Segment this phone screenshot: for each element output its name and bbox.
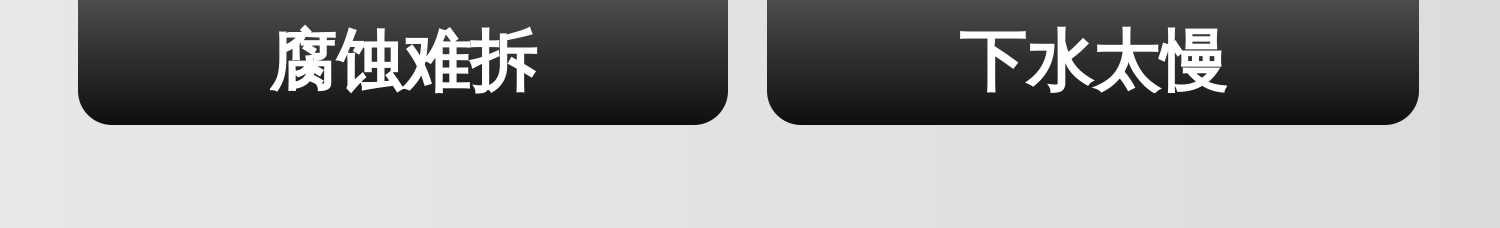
button[interactable]: 腐蚀难拆: [78, 0, 728, 125]
staticText: 下水太慢: [959, 21, 1227, 103]
button[interactable]: 下水太慢: [767, 0, 1419, 125]
staticText: 腐蚀难拆: [269, 21, 537, 103]
